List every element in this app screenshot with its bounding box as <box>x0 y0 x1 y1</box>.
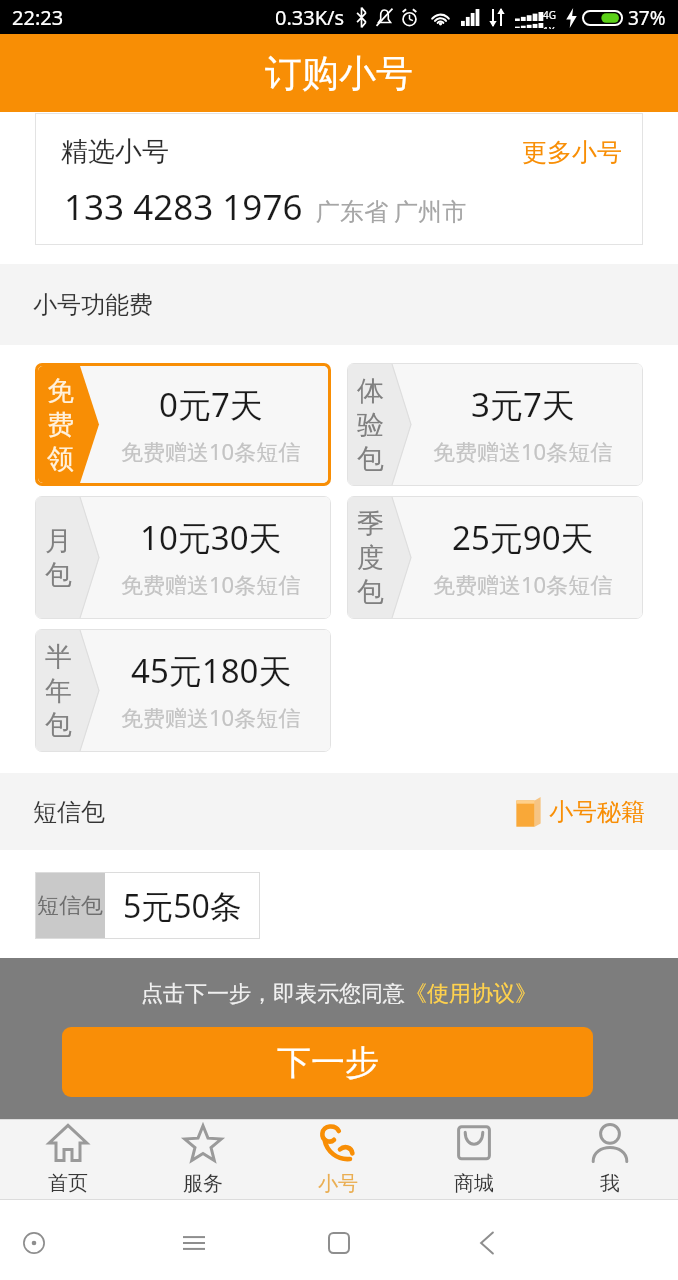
staticText: 133 4283 1976 <box>64 183 303 231</box>
button[interactable]: 体 <box>348 364 642 485</box>
staticText: 度 <box>357 541 384 575</box>
staticText: 包 <box>45 558 72 592</box>
staticText: 领 <box>47 442 74 476</box>
staticText: 免费赠送10条短信 <box>121 436 301 466</box>
staticText: 45元180天 <box>131 648 292 693</box>
staticText: 0元7天 <box>159 382 263 427</box>
staticText: 免费赠送10条短信 <box>121 702 301 732</box>
staticText: 10元30天 <box>140 515 282 560</box>
staticText: 包 <box>357 442 384 476</box>
staticText: 服务 <box>183 1171 223 1196</box>
button[interactable]: 半 <box>36 630 330 751</box>
staticText: 年 <box>45 674 72 708</box>
button[interactable]: Assistant <box>10 1219 58 1267</box>
button[interactable]: Back <box>463 1219 511 1267</box>
staticText: 免 <box>47 374 74 408</box>
staticText: 半 <box>45 640 72 674</box>
staticText: 首页 <box>48 1171 88 1196</box>
button[interactable]: 《使用协议》 <box>405 980 537 1008</box>
staticText: 体 <box>357 374 384 408</box>
staticText: 精选小号 <box>61 135 169 169</box>
staticText: 免费赠送10条短信 <box>121 569 301 599</box>
staticText: 5元50条 <box>123 884 242 928</box>
staticText: 广东省 广州市 <box>316 194 467 227</box>
staticText: 小号秘籍 <box>549 797 645 827</box>
staticText: 季 <box>357 507 384 541</box>
button[interactable]: 下一步 <box>62 1027 593 1097</box>
staticText: 短信包 <box>33 797 105 827</box>
staticText: 月 <box>45 524 72 558</box>
staticText: 更多小号 <box>522 137 622 168</box>
button[interactable]: 月 <box>36 497 330 618</box>
staticText: 4G <box>543 8 556 22</box>
button[interactable]: 免 <box>38 366 328 483</box>
staticText: 免费赠送10条短信 <box>433 569 613 599</box>
button[interactable]: 商城 <box>406 1120 542 1199</box>
button[interactable]: 服务 <box>135 1120 270 1199</box>
button[interactable]: Recent apps <box>170 1219 218 1267</box>
button[interactable]: Home <box>315 1219 363 1267</box>
staticText: 验 <box>357 408 384 442</box>
staticText: 下一步 <box>277 1041 379 1084</box>
staticText: 费 <box>47 408 74 442</box>
staticText: 短信包 <box>37 892 103 920</box>
button[interactable]: 首页 <box>0 1120 135 1199</box>
staticText: 包 <box>357 575 384 609</box>
staticText: 0.33K/s <box>275 4 345 31</box>
button[interactable]: 小号秘籍 <box>515 796 645 828</box>
staticText: 25元90天 <box>452 515 594 560</box>
button[interactable]: 短信包 <box>35 872 260 939</box>
button[interactable]: 小号 <box>270 1120 406 1199</box>
button[interactable]: 我 <box>542 1120 678 1199</box>
staticText: 37% <box>628 5 666 31</box>
staticText: 小号 <box>318 1171 358 1196</box>
staticText: 订购小号 <box>265 50 413 97</box>
staticText: 我 <box>600 1171 620 1196</box>
staticText: 免费赠送10条短信 <box>433 436 613 466</box>
button[interactable]: 季 <box>348 497 642 618</box>
staticText: 包 <box>45 708 72 742</box>
staticText: 1X <box>543 24 555 29</box>
staticText: 小号功能费 <box>33 290 153 320</box>
staticText: 商城 <box>454 1171 494 1196</box>
staticText: 3元7天 <box>471 382 575 427</box>
staticText: 点击下一步，即表示您同意 <box>141 980 405 1008</box>
staticText: 22:23 <box>12 4 64 31</box>
button[interactable]: 精选小号 <box>35 113 643 245</box>
